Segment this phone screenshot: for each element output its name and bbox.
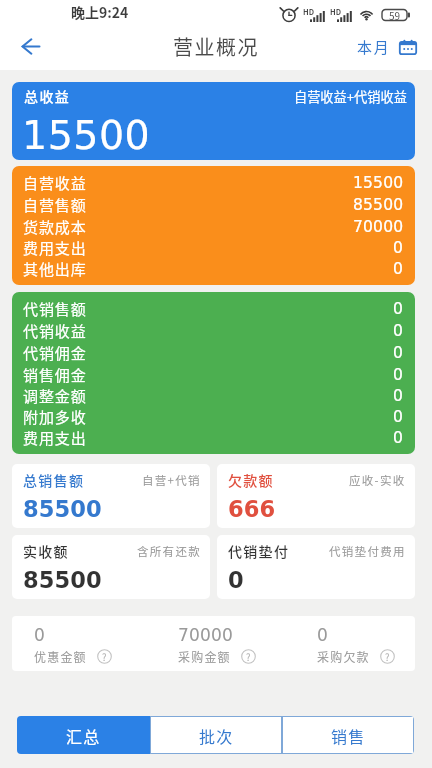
staticText: 销售 [331, 724, 366, 747]
button[interactable]: 自营收益 [12, 166, 415, 285]
staticText: 实收额 [23, 541, 69, 561]
button[interactable]: 实收额 [12, 535, 210, 599]
staticText: 本月 [357, 36, 391, 58]
staticText: 自营收益+代销收益 [294, 87, 407, 106]
staticText: 汇总 [66, 724, 101, 747]
staticText: 调整金额 [23, 385, 87, 406]
staticText: 0 [393, 300, 404, 318]
staticText: HD [303, 6, 315, 17]
staticText: 15500 [353, 174, 404, 192]
button[interactable]: Help [380, 649, 395, 664]
button[interactable]: Help [241, 649, 256, 664]
staticText: 晚上9:24 [71, 2, 129, 22]
staticText: 总收益 [24, 86, 71, 106]
staticText: 0 [317, 625, 329, 645]
staticText: ? [246, 650, 251, 664]
staticText: 代销垫付 [228, 541, 290, 561]
staticText: 0 [393, 344, 404, 362]
button[interactable]: Back [15, 30, 47, 62]
button[interactable]: 代销售额 [12, 292, 415, 454]
button[interactable]: 代销垫付 [217, 535, 415, 599]
button[interactable]: 批次 [150, 716, 282, 754]
button[interactable]: 总收益 [12, 82, 415, 160]
staticText: 代销售额 [23, 298, 87, 320]
staticText: 代销垫付费用 [329, 543, 406, 560]
staticText: 费用支出 [23, 237, 87, 258]
button[interactable]: Help [97, 649, 112, 664]
button[interactable]: 销售 [282, 716, 414, 754]
staticText: HD [330, 6, 342, 17]
button[interactable]: 本月 [357, 36, 417, 58]
staticText: 代销佣金 [23, 342, 87, 364]
staticText: ? [102, 650, 107, 664]
staticText: 0 [393, 429, 404, 447]
staticText: 其他出库 [23, 258, 87, 279]
button[interactable]: 总销售额 [12, 464, 210, 528]
staticText: 自营+代销 [142, 472, 201, 489]
staticText: 代销收益 [23, 320, 87, 342]
button[interactable]: 0 [281, 616, 415, 671]
staticText: 营业概况 [173, 32, 259, 61]
staticText: 销售佣金 [23, 364, 87, 385]
button[interactable]: 70000 [147, 616, 281, 671]
staticText: 85500 [23, 496, 102, 522]
staticText: 费用支出 [23, 427, 87, 448]
staticText: 优惠金额 [34, 648, 87, 665]
staticText: 0 [393, 239, 404, 257]
staticText: 总销售额 [23, 470, 85, 490]
staticText: 85500 [23, 567, 102, 593]
staticText: 70000 [178, 625, 234, 645]
staticText: 含所有还款 [137, 543, 201, 560]
staticText: 采购金额 [178, 648, 231, 665]
staticText: 附加多收 [23, 406, 87, 427]
staticText: 0 [393, 366, 404, 384]
staticText: 85500 [353, 196, 404, 214]
staticText: 货款成本 [23, 216, 87, 237]
button[interactable]: 汇总 [17, 716, 150, 754]
staticText: 0 [228, 567, 244, 593]
staticText: 15500 [22, 112, 151, 158]
staticText: 70000 [353, 218, 404, 236]
staticText: ? [385, 650, 390, 664]
staticText: 0 [393, 408, 404, 426]
staticText: 欠款额 [228, 470, 274, 490]
staticText: 0 [393, 387, 404, 405]
staticText: 采购欠款 [317, 648, 370, 665]
staticText: 应收-实收 [349, 472, 406, 489]
staticText: 0 [34, 625, 46, 645]
button[interactable]: 欠款额 [217, 464, 415, 528]
button[interactable]: 0 [12, 616, 147, 671]
staticText: 自营售额 [23, 194, 87, 216]
staticText: 自营收益 [23, 172, 87, 194]
staticText: 666 [228, 496, 276, 522]
staticText: 0 [393, 322, 404, 340]
staticText: 0 [393, 260, 404, 278]
staticText: 批次 [199, 724, 234, 747]
staticText: 59 [389, 8, 401, 22]
